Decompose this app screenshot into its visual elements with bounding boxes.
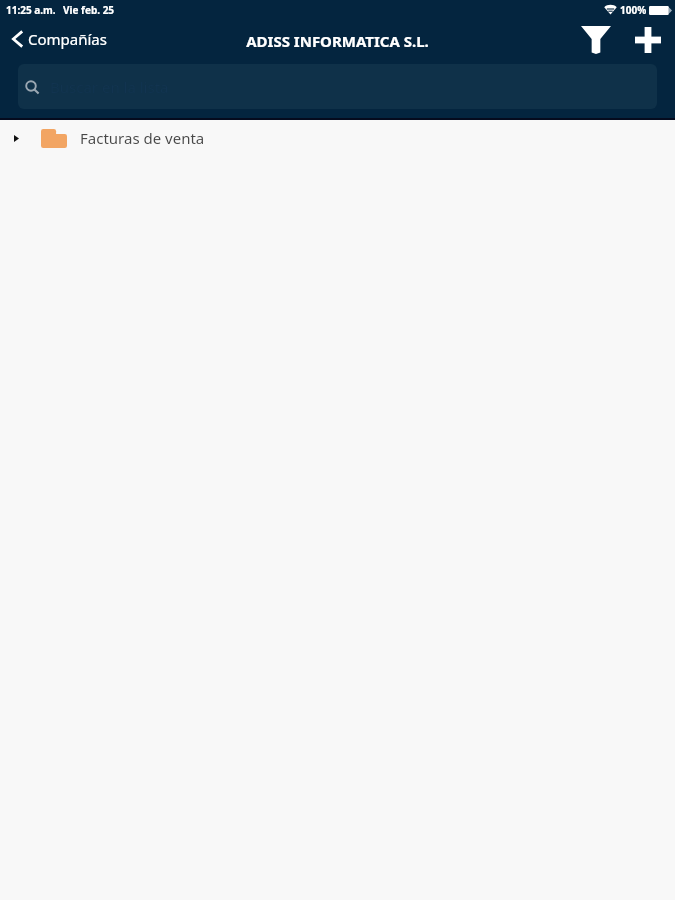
button[interactable]: Facturas de venta xyxy=(0,122,675,154)
button[interactable]: Filter xyxy=(573,18,618,61)
staticText: Vie feb. 25 xyxy=(63,3,115,17)
staticText: ADISS INFORMATICA S.L. xyxy=(246,31,429,51)
button[interactable]: Buscar en la lista xyxy=(18,64,657,109)
staticText: Facturas de venta xyxy=(80,128,205,148)
staticText: 100% xyxy=(620,3,647,17)
button[interactable]: Add xyxy=(625,18,670,61)
staticText: 11:25 a.m. xyxy=(6,3,56,17)
button[interactable]: Compañías xyxy=(0,26,115,52)
staticText: Compañías xyxy=(28,29,107,49)
